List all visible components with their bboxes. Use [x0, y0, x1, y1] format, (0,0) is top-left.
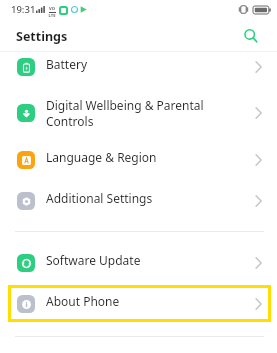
- staticText: Additional Settings: [46, 190, 153, 206]
- staticText: About Phone: [46, 293, 120, 309]
- staticText: LTE: [48, 13, 56, 19]
- staticText: Software Update: [46, 252, 141, 268]
- staticText: Settings: [16, 28, 68, 45]
- button[interactable]: Digital Wellbeing & Parental Controls: [0, 87, 277, 139]
- staticText: 19:31: [11, 3, 36, 16]
- button[interactable]: Search: [236, 21, 266, 51]
- staticText: Battery: [46, 56, 88, 72]
- button[interactable]: Additional Settings: [0, 180, 277, 221]
- button[interactable]: Software Update: [0, 242, 277, 283]
- staticText: Language & Region: [46, 149, 157, 165]
- staticText: VO: [49, 6, 55, 12]
- button[interactable]: Battery: [0, 46, 277, 87]
- button[interactable]: About Phone: [0, 283, 277, 324]
- button[interactable]: Language & Region: [0, 139, 277, 180]
- staticText: Digital Wellbeing & Parental Controls: [46, 97, 206, 129]
